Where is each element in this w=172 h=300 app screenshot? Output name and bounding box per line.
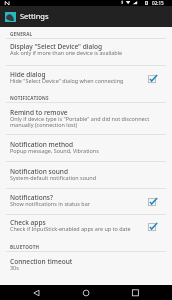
button[interactable]: Notification sound [0,162,172,189]
staticText: Only if device type is "Portable" and di… [10,115,158,128]
staticText: System-default notification sound [10,174,97,181]
staticText: Remind to remove [10,108,68,117]
staticText: BLUETOOTH [10,244,40,250]
staticText: Notification method [10,140,74,149]
button[interactable]: Notification method [0,135,172,162]
button[interactable]: Check apps [0,215,172,241]
button[interactable]: Home [78,285,94,300]
staticText: Check apps [10,218,46,227]
staticText: Check if InputStick-enabled apps are up … [10,225,131,232]
staticText: Show notifications in status bar [10,200,90,207]
staticText: GENERAL [10,31,33,37]
staticText: Notifications? [10,193,53,202]
button[interactable]: Back [29,285,45,300]
staticText: NOTIFICATIONS [10,95,49,101]
staticText: Ask only if more than one device is avai… [10,49,123,56]
staticText: Display "Select Device" dialog [10,42,103,51]
button[interactable]: Toggle setting [148,222,158,232]
button[interactable]: Display "Select Device" dialog [0,39,172,66]
staticText: Hide dialog [10,70,46,79]
button[interactable]: Recent apps [127,285,143,300]
button[interactable]: Hide dialog [0,66,172,93]
button[interactable]: Connection timeout [0,252,172,278]
button[interactable]: Toggle setting [148,74,158,84]
staticText: Notification sound [10,167,68,176]
staticText: 02:15 [152,0,164,6]
staticText: Popup message, Sound, Vibrations [10,147,99,154]
button[interactable]: Toggle setting [148,197,158,207]
staticText: Settings [20,11,49,21]
button[interactable]: Notifications? [0,189,172,215]
staticText: Hide "Select Device" dialog when connect… [10,77,124,84]
staticText: 30s [10,264,19,271]
staticText: Connection timeout [10,257,73,266]
button[interactable]: Remind to remove [0,103,172,135]
